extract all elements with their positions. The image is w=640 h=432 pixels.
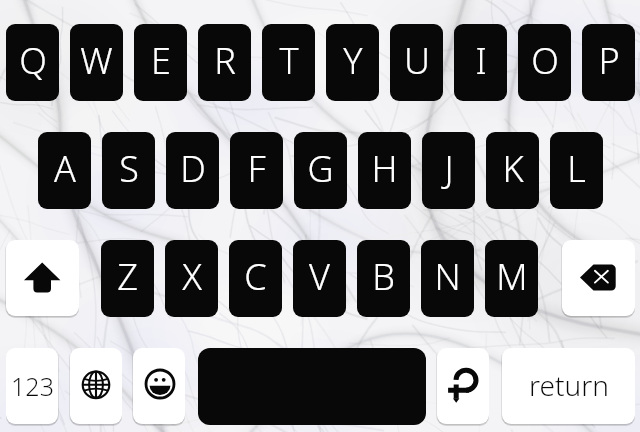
- button[interactable]: C: [229, 240, 282, 317]
- button[interactable]: M: [485, 240, 538, 317]
- staticText: R: [214, 36, 236, 85]
- staticText: H: [371, 144, 398, 193]
- staticText: U: [404, 36, 430, 85]
- staticText: X: [182, 252, 202, 301]
- button[interactable]: U: [390, 24, 443, 101]
- button[interactable]: S: [102, 132, 155, 209]
- button[interactable]: E: [134, 24, 187, 101]
- button[interactable]: A: [38, 132, 91, 209]
- button[interactable]: Change keyboard language: [70, 348, 122, 424]
- button[interactable]: B: [357, 240, 410, 317]
- button[interactable]: V: [293, 240, 346, 317]
- button[interactable]: Emoji: [133, 348, 185, 424]
- button[interactable]: Shift: [6, 240, 79, 316]
- staticText: C: [244, 252, 267, 301]
- button[interactable]: R: [198, 24, 251, 101]
- button[interactable]: Voice input: [437, 348, 489, 424]
- button[interactable]: X: [165, 240, 218, 317]
- button[interactable]: 123: [6, 348, 58, 424]
- button[interactable]: Backspace: [562, 240, 635, 316]
- staticText: E: [151, 36, 171, 85]
- staticText: Z: [117, 252, 138, 301]
- staticText: O: [531, 36, 559, 85]
- staticText: S: [119, 144, 139, 193]
- button[interactable]: Space: [198, 348, 426, 425]
- staticText: Q: [19, 36, 47, 85]
- staticText: return: [529, 366, 609, 404]
- staticText: I: [475, 36, 487, 85]
- staticText: 123: [11, 369, 54, 403]
- staticText: T: [279, 36, 299, 85]
- staticText: J: [444, 144, 454, 193]
- staticText: L: [567, 144, 586, 193]
- staticText: B: [372, 252, 395, 301]
- button[interactable]: I: [454, 24, 507, 101]
- button[interactable]: K: [486, 132, 539, 209]
- button[interactable]: F: [230, 132, 283, 209]
- button[interactable]: D: [166, 132, 219, 209]
- button[interactable]: P: [582, 24, 635, 101]
- staticText: V: [309, 252, 330, 301]
- button[interactable]: J: [422, 132, 475, 209]
- button[interactable]: T: [262, 24, 315, 101]
- staticText: N: [434, 252, 461, 301]
- staticText: P: [598, 36, 620, 85]
- staticText: Y: [343, 36, 363, 85]
- button[interactable]: return: [502, 348, 635, 424]
- button[interactable]: H: [358, 132, 411, 209]
- button[interactable]: O: [518, 24, 571, 101]
- staticText: K: [502, 144, 524, 193]
- button[interactable]: N: [421, 240, 474, 317]
- button[interactable]: G: [294, 132, 347, 209]
- button[interactable]: L: [550, 132, 603, 209]
- staticText: F: [247, 144, 266, 193]
- button[interactable]: Q: [6, 24, 59, 101]
- button[interactable]: Y: [326, 24, 379, 101]
- button[interactable]: W: [70, 24, 123, 101]
- staticText: A: [54, 144, 76, 193]
- staticText: G: [307, 144, 334, 193]
- staticText: M: [496, 252, 528, 301]
- button[interactable]: Z: [101, 240, 154, 317]
- staticText: W: [80, 36, 113, 85]
- staticText: D: [180, 144, 206, 193]
